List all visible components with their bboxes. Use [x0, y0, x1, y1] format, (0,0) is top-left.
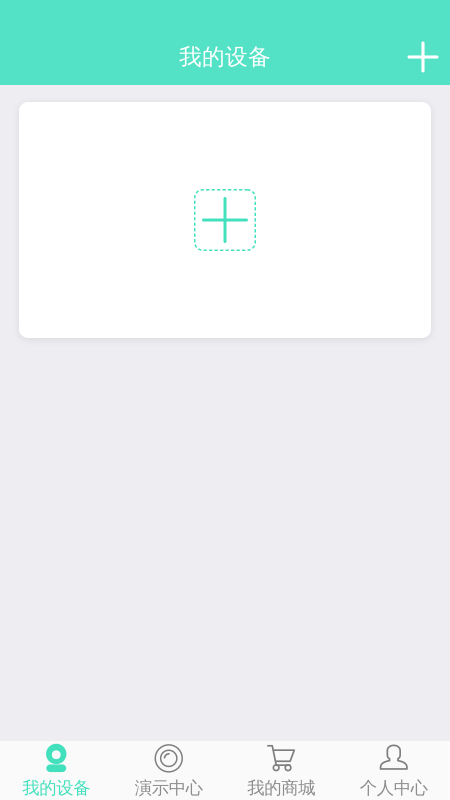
staticText: 我的商城 [247, 777, 315, 799]
button[interactable]: 添加设备 [19, 102, 431, 338]
staticText: 我的设备 [22, 777, 90, 799]
staticText: 我的设备 [179, 43, 271, 71]
button[interactable]: 个人中心 [337, 737, 450, 800]
button[interactable]: 我的商城 [225, 737, 337, 800]
staticText: 个人中心 [360, 777, 428, 799]
button[interactable]: 我的设备 [0, 737, 112, 800]
button[interactable]: 演示中心 [112, 737, 225, 800]
staticText: 演示中心 [135, 777, 203, 799]
button[interactable]: 添加设备 [396, 30, 450, 84]
